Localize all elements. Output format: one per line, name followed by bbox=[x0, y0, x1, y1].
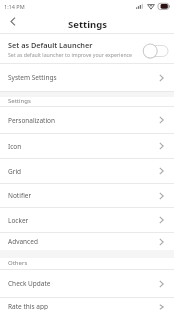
button[interactable]: Icon bbox=[0, 134, 174, 158]
staticText: Rate this app bbox=[8, 302, 48, 310]
staticText: Grid bbox=[8, 167, 22, 176]
staticText: Check Update bbox=[8, 279, 51, 288]
button[interactable]: Rate this app bbox=[0, 298, 174, 310]
staticText: Locker bbox=[8, 216, 29, 225]
staticText: 1:14 PM bbox=[4, 3, 25, 10]
staticText: Settings bbox=[8, 97, 31, 104]
staticText: Set as Default Launcher bbox=[8, 40, 93, 50]
staticText: Others bbox=[8, 259, 28, 267]
staticText: Icon bbox=[8, 142, 22, 151]
staticText: Settings bbox=[68, 18, 107, 31]
button[interactable]: Advanced bbox=[0, 233, 174, 250]
staticText: Notifier bbox=[8, 191, 32, 200]
button[interactable]: Personalization bbox=[0, 107, 174, 133]
staticText: Personalization bbox=[8, 116, 56, 125]
staticText: Set as default launcher to improve your … bbox=[8, 51, 133, 58]
button[interactable] bbox=[6, 14, 20, 28]
staticText: Advanced bbox=[8, 237, 38, 246]
button[interactable]: Set as Default Launcher bbox=[0, 34, 174, 63]
staticText: System Settings bbox=[8, 73, 57, 82]
button[interactable]: System Settings bbox=[0, 64, 174, 91]
button[interactable]: Locker bbox=[0, 208, 174, 232]
button[interactable]: Check Update bbox=[0, 270, 174, 297]
button[interactable]: Grid bbox=[0, 159, 174, 183]
button[interactable]: Notifier bbox=[0, 184, 174, 207]
